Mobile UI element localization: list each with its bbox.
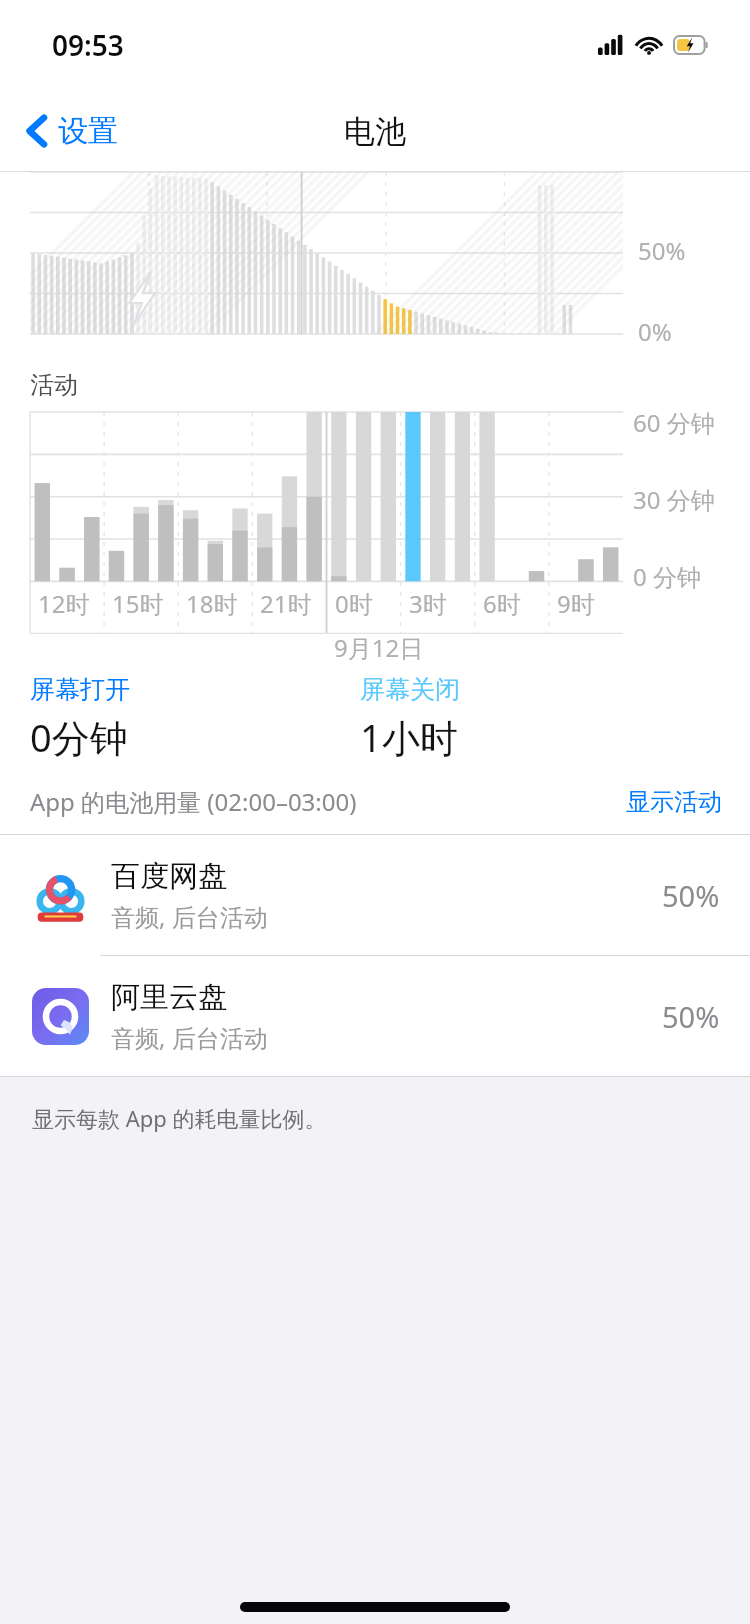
staticText: 活动: [30, 370, 78, 400]
staticText: 音频, 后台活动: [111, 900, 268, 933]
staticText: 50%: [662, 876, 720, 915]
staticText: 显示每款 App 的耗电量比例。: [32, 1103, 327, 1133]
staticText: 0时: [335, 587, 373, 620]
staticText: 12时: [38, 587, 90, 620]
staticText: App 的电池用量 (02:00–03:00): [30, 785, 357, 818]
staticText: 0分钟: [30, 711, 128, 763]
staticText: 09:53: [52, 26, 124, 64]
staticText: 设置: [58, 112, 118, 150]
staticText: 百度网盘: [111, 858, 227, 895]
staticText: 屏幕打开: [30, 674, 130, 705]
staticText: 15时: [112, 587, 164, 620]
staticText: 9时: [557, 587, 595, 620]
staticText: 18时: [186, 587, 238, 620]
staticText: 0 分钟: [633, 560, 701, 593]
staticText: 0%: [638, 315, 672, 348]
staticText: 21时: [260, 587, 312, 620]
staticText: 阿里云盘: [111, 979, 227, 1016]
staticText: 电池: [344, 112, 406, 151]
staticText: 3时: [409, 587, 447, 620]
button[interactable]: 设置: [16, 104, 128, 158]
staticText: 显示活动: [626, 787, 722, 817]
staticText: 音频, 后台活动: [111, 1021, 268, 1054]
staticText: 30 分钟: [633, 483, 715, 516]
button[interactable]: 百度网盘: [0, 835, 750, 955]
staticText: 50%: [638, 234, 686, 267]
staticText: 6时: [483, 587, 521, 620]
staticText: 屏幕关闭: [360, 674, 460, 705]
button[interactable]: 显示活动: [626, 787, 722, 817]
staticText: 60 分钟: [633, 406, 715, 439]
staticText: 50%: [662, 997, 720, 1036]
staticText: 1小时: [360, 711, 458, 763]
staticText: 9月12日: [334, 631, 424, 664]
button[interactable]: 阿里云盘: [0, 956, 750, 1076]
